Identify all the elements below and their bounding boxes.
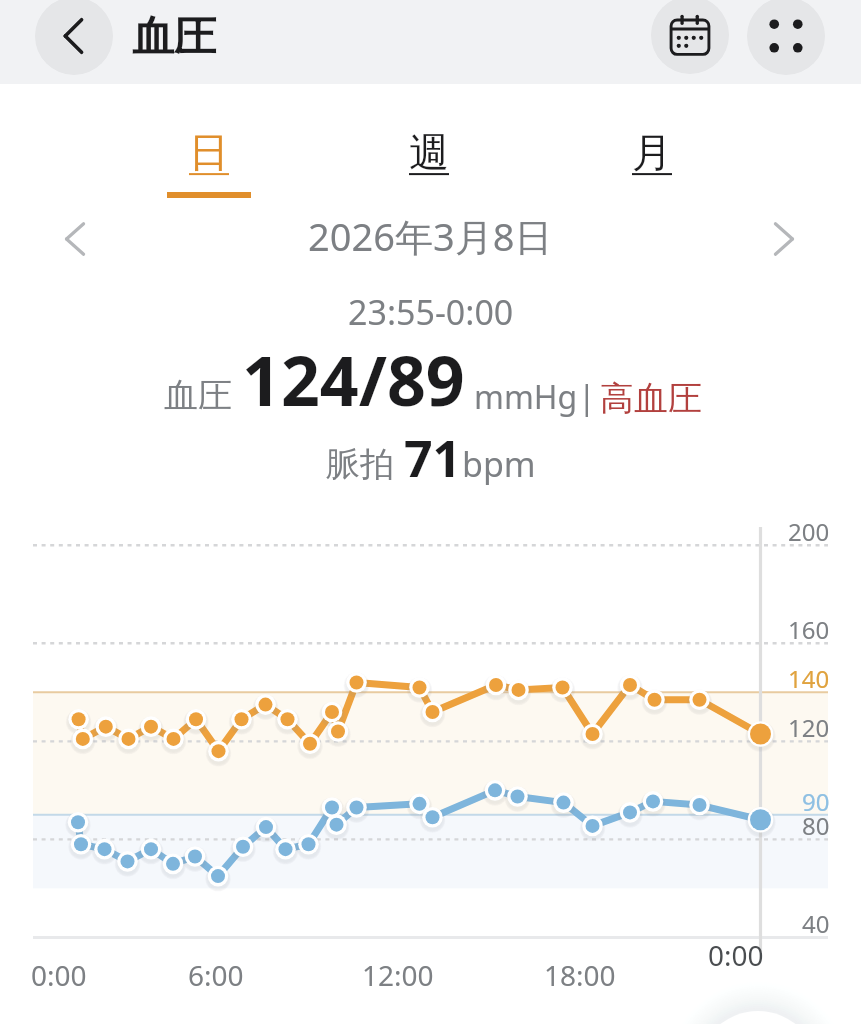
staticText: mmHg <box>474 375 578 419</box>
staticText: 血圧 <box>132 11 216 64</box>
staticText: 200 <box>788 515 830 541</box>
staticText: 160 <box>788 613 830 639</box>
staticText: bpm <box>462 441 536 487</box>
button[interactable]: Calendar <box>651 0 729 74</box>
staticText: 0:00 <box>31 956 87 994</box>
button[interactable]: Back <box>35 0 113 75</box>
staticText: 12:00 <box>362 956 434 994</box>
staticText: 120 <box>788 711 830 737</box>
staticText: 40 <box>802 907 830 933</box>
staticText: 80 <box>802 809 830 835</box>
staticText: 6:00 <box>188 956 244 994</box>
staticText: 脈拍 <box>326 443 394 486</box>
staticText: 23:55-0:00 <box>348 289 514 335</box>
button[interactable]: Previous day <box>52 215 100 263</box>
staticText: 90 <box>802 785 830 811</box>
staticText: 高血圧 <box>600 377 702 420</box>
staticText: 140 <box>788 662 830 688</box>
staticText: | <box>578 375 596 419</box>
staticText: 2026年3月8日 <box>308 210 553 262</box>
staticText: 週 <box>409 127 449 177</box>
staticText: 0:00 <box>708 936 764 974</box>
button[interactable]: 日 <box>154 110 264 205</box>
staticText: 71 <box>404 424 462 492</box>
staticText: 日 <box>189 127 229 177</box>
button[interactable]: 月 <box>597 110 707 205</box>
staticText: 124/89 <box>242 333 465 426</box>
button[interactable]: Next day <box>759 215 807 263</box>
button[interactable]: 週 <box>374 110 484 205</box>
staticText: 月 <box>632 127 672 177</box>
staticText: 血圧 <box>164 374 232 417</box>
button[interactable]: More options <box>747 0 825 75</box>
staticText: 18:00 <box>544 956 616 994</box>
